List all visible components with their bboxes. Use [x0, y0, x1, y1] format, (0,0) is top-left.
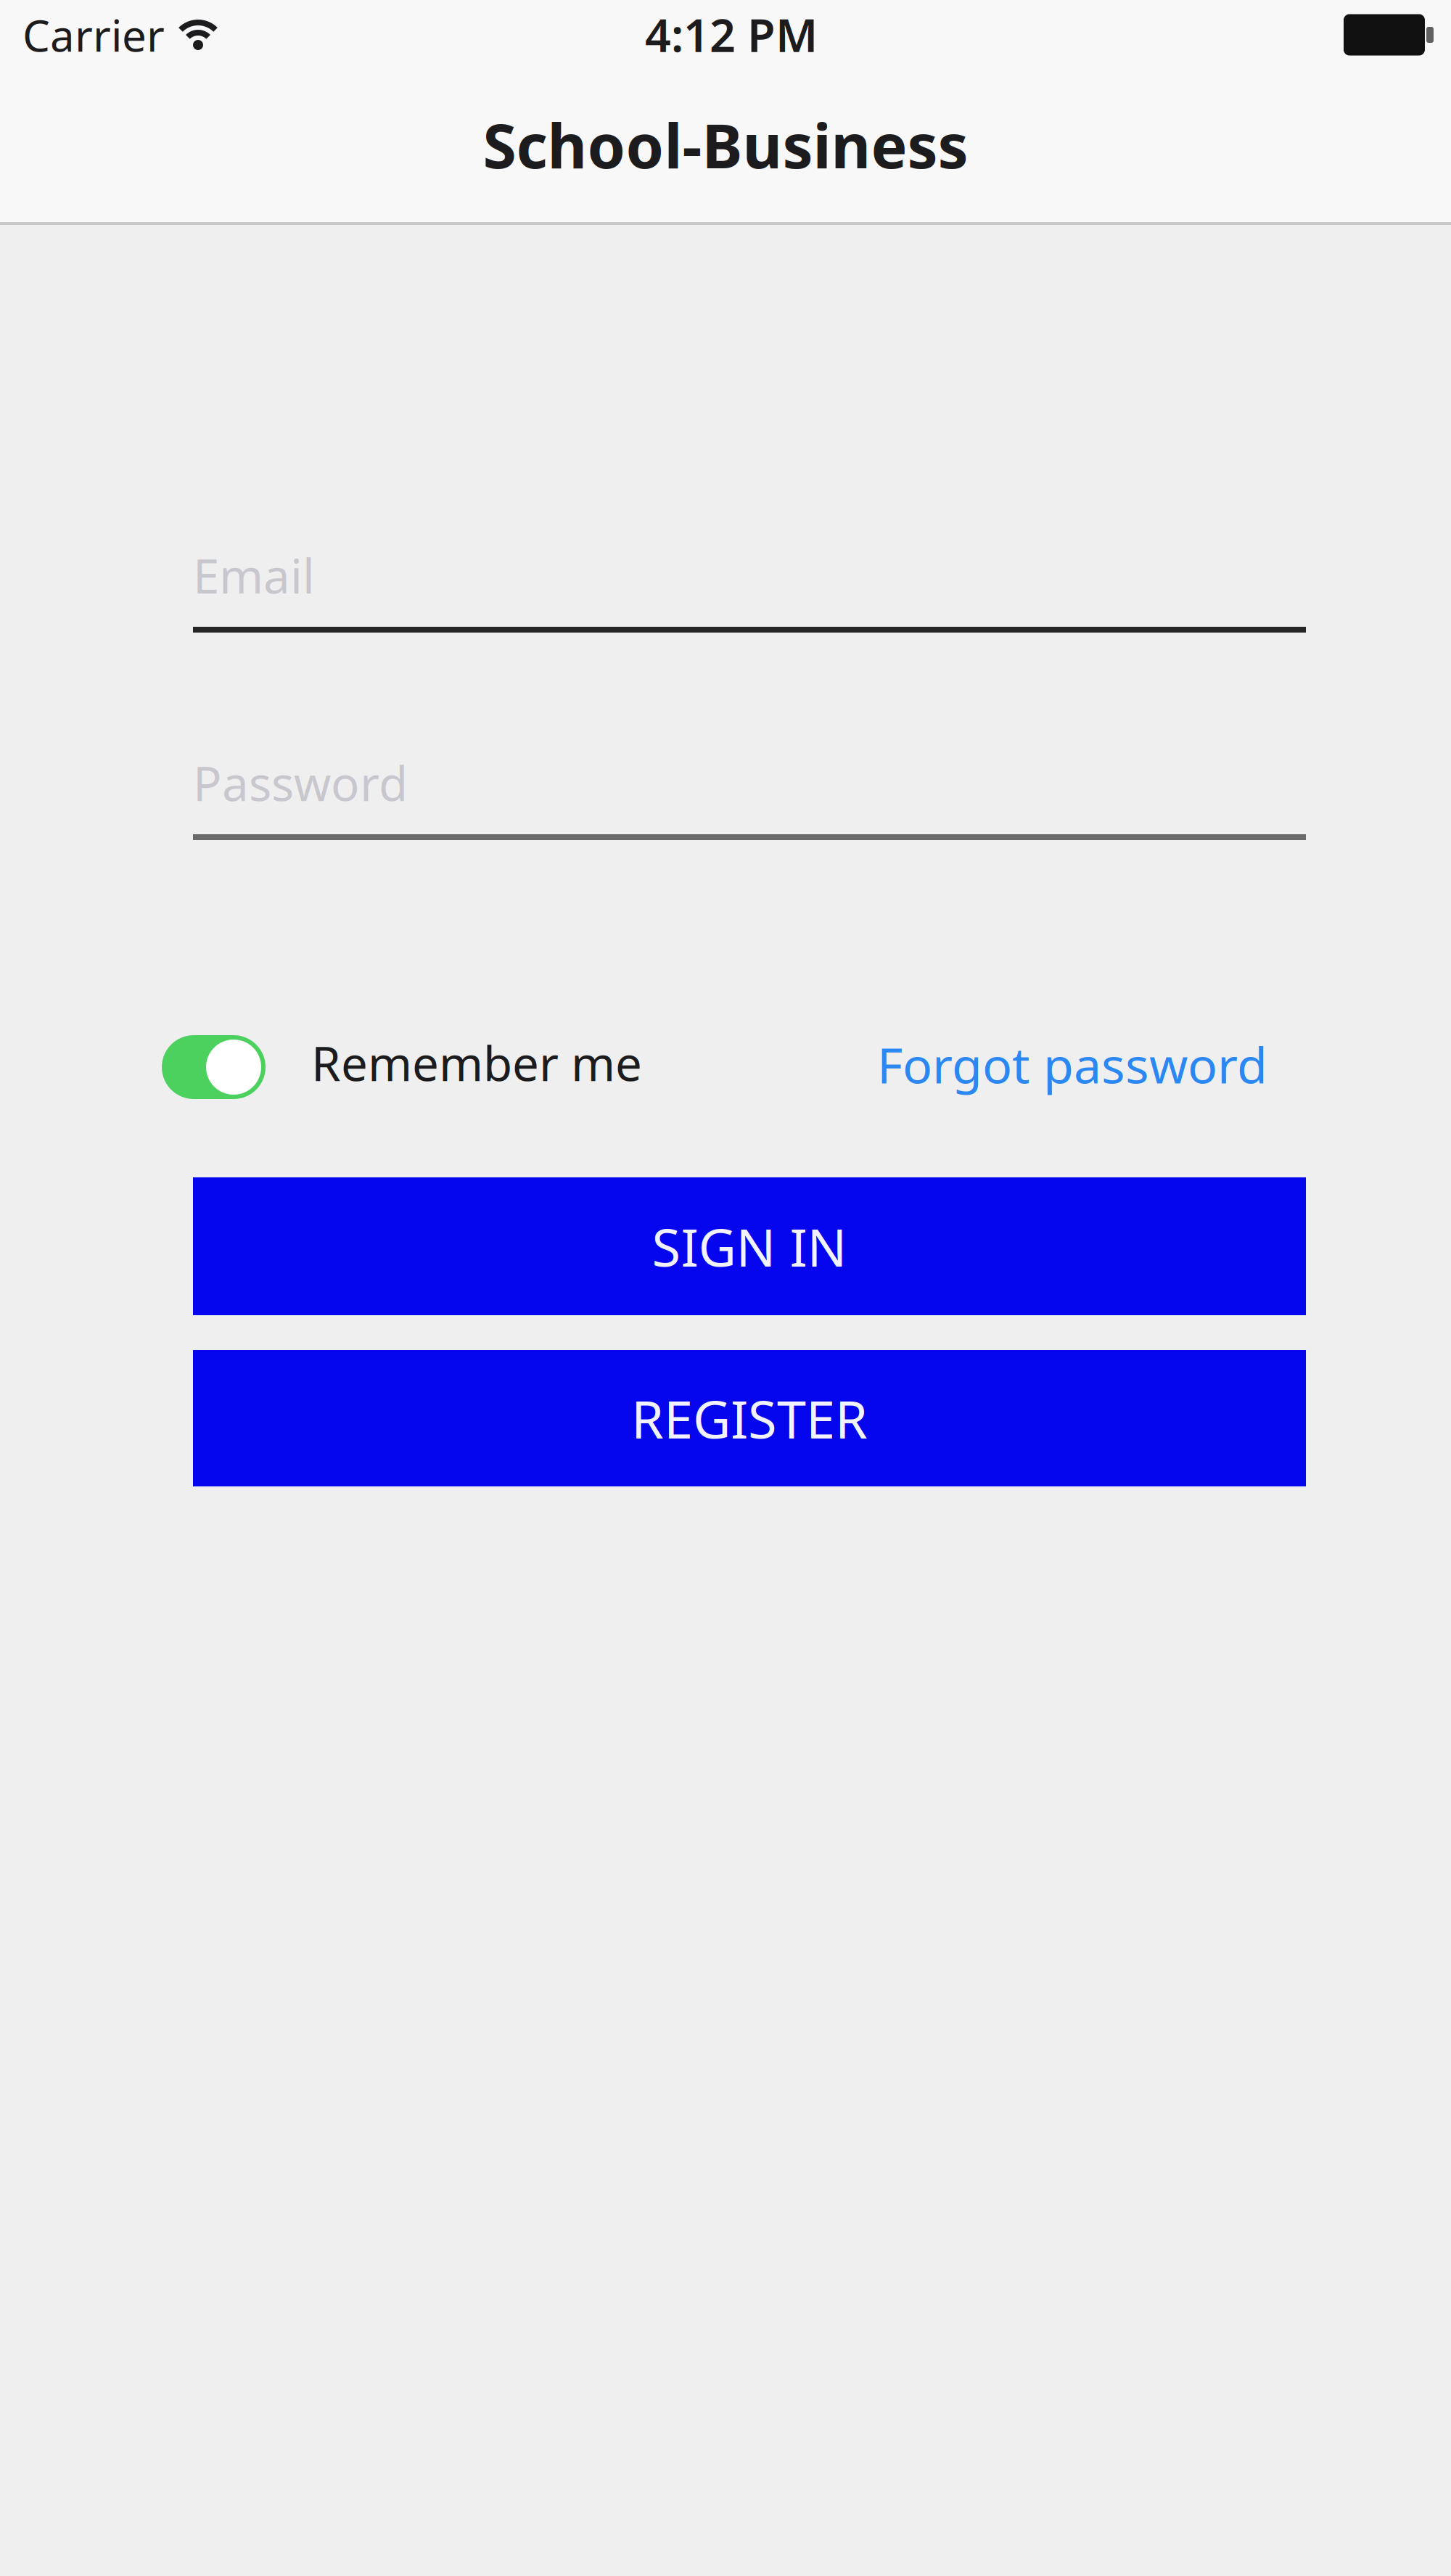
button[interactable]: Email	[193, 550, 1306, 633]
staticText: REGISTER	[631, 1384, 868, 1453]
staticText: Email	[193, 544, 315, 607]
button[interactable]: Remember me	[162, 1035, 266, 1099]
staticText: SIGN IN	[652, 1212, 847, 1281]
button[interactable]: REGISTER	[193, 1350, 1306, 1486]
staticText: Carrier	[22, 6, 165, 64]
staticText: Remember me	[311, 1031, 642, 1094]
staticText: Forgot password	[877, 1031, 1267, 1097]
staticText: Password	[193, 751, 408, 814]
button[interactable]: Password	[193, 757, 1306, 840]
staticText: 4:12 PM	[645, 4, 818, 65]
staticText: School-Business	[483, 104, 968, 185]
button[interactable]: Forgot password	[877, 1034, 1267, 1100]
button[interactable]: SIGN IN	[193, 1177, 1306, 1315]
